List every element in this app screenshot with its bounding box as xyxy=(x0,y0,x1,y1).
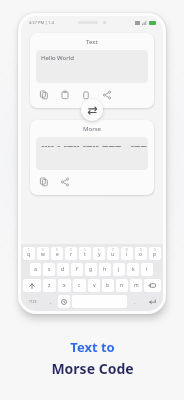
staticText: 1 xyxy=(28,248,30,252)
staticText: Text xyxy=(36,38,148,46)
staticText: Morse xyxy=(36,125,148,133)
staticText: b xyxy=(106,282,110,289)
staticText: l xyxy=(146,266,148,273)
staticText: y xyxy=(98,251,101,258)
button[interactable]: 4 xyxy=(65,247,77,260)
button[interactable]: copy xyxy=(36,87,52,103)
staticText: 3 xyxy=(56,248,58,252)
button[interactable]: Hello World xyxy=(41,54,143,79)
staticText: s xyxy=(48,266,51,273)
button[interactable]: a xyxy=(30,263,41,276)
staticText: v xyxy=(93,282,96,289)
staticText: 6 xyxy=(98,248,100,252)
button[interactable]: v xyxy=(88,279,100,292)
staticText: m xyxy=(134,282,139,289)
staticText: n xyxy=(120,282,124,289)
staticText: 2 xyxy=(42,248,44,252)
staticText: u xyxy=(111,251,115,258)
staticText: o xyxy=(139,251,143,258)
staticText: 8 xyxy=(126,248,128,252)
button[interactable]: 5 xyxy=(79,247,91,260)
button[interactable]: 1 xyxy=(23,247,35,260)
staticText: , xyxy=(50,299,52,305)
button[interactable]: k xyxy=(127,263,139,276)
button[interactable]: g xyxy=(85,263,97,276)
staticText: r xyxy=(70,251,73,258)
staticText: k xyxy=(132,266,135,273)
button[interactable]: Swap xyxy=(81,99,103,121)
staticText: Text to xyxy=(70,338,115,356)
staticText: e xyxy=(56,251,59,258)
button[interactable]: share xyxy=(57,174,73,190)
button[interactable]: l xyxy=(141,263,153,276)
staticText: x xyxy=(63,282,66,289)
button[interactable]: 2 xyxy=(37,247,49,260)
staticText: j xyxy=(118,266,120,273)
button[interactable]: c xyxy=(73,279,86,292)
button[interactable]: b xyxy=(102,279,114,292)
button[interactable]: j xyxy=(113,263,125,276)
button[interactable]: m xyxy=(130,279,142,292)
button[interactable]: 7 xyxy=(107,247,119,260)
button[interactable]: s xyxy=(43,263,55,276)
staticText: d xyxy=(61,266,65,273)
staticText: 4:37 PM | 1.4 xyxy=(29,20,54,25)
button[interactable]: d xyxy=(57,263,69,276)
button[interactable]: share xyxy=(99,87,115,103)
staticText: c xyxy=(78,282,81,289)
staticText: 7 xyxy=(112,248,114,252)
button[interactable]: comma xyxy=(45,295,56,308)
button[interactable]: paste xyxy=(57,87,73,103)
button[interactable]: copy xyxy=(36,174,52,190)
staticText: p xyxy=(153,251,157,258)
button[interactable]: x xyxy=(58,279,71,292)
button[interactable] xyxy=(41,141,143,166)
staticText: g xyxy=(89,266,93,273)
staticText: 9 xyxy=(140,248,142,252)
button[interactable]: z xyxy=(43,279,56,292)
staticText: i xyxy=(126,251,128,258)
button[interactable]: backspace xyxy=(144,279,161,292)
staticText: 0 xyxy=(154,248,156,252)
button[interactable]: 6 xyxy=(93,247,105,260)
staticText: ?123 xyxy=(29,299,37,304)
staticText: q xyxy=(27,251,31,258)
staticText: . xyxy=(134,299,136,305)
button[interactable]: 3 xyxy=(51,247,63,260)
staticText: Hello World xyxy=(41,54,74,62)
button[interactable]: enter xyxy=(143,295,161,308)
staticText: h xyxy=(103,266,107,273)
button[interactable]: clear xyxy=(78,87,94,103)
staticText: 4 xyxy=(70,248,72,252)
staticText: a xyxy=(34,266,37,273)
button[interactable]: 8 xyxy=(121,247,133,260)
button[interactable]: symbols xyxy=(23,295,43,308)
button[interactable]: 9 xyxy=(135,247,147,260)
staticText: 5 xyxy=(84,248,86,252)
button[interactable]: f xyxy=(71,263,83,276)
button[interactable]: emoji xyxy=(58,295,70,308)
staticText: Morse Code xyxy=(51,359,134,378)
staticText: t xyxy=(84,251,86,258)
button[interactable]: 0 xyxy=(149,247,161,260)
staticText: f xyxy=(76,266,78,273)
staticText: z xyxy=(48,282,51,289)
button[interactable]: h xyxy=(99,263,111,276)
button[interactable]: n xyxy=(116,279,128,292)
staticText: w xyxy=(41,251,45,258)
button[interactable]: shift xyxy=(23,279,41,292)
